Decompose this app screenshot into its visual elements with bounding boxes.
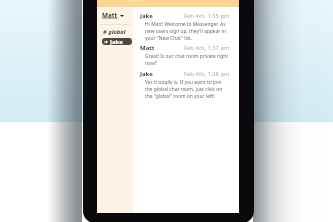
staticText: Feb 4th, 1:38 pm [184,70,230,78]
staticText: your "New Chat" list. [145,35,193,42]
staticText: the global chat room, just click on [145,86,223,93]
button[interactable]: Jake [102,38,132,45]
staticText: the "global" room on your left! [145,93,215,100]
staticText: Feb 4th, 1:37 pm [184,44,230,52]
staticText: Matt [102,11,118,20]
staticText: Great! Is our chat room private right [145,53,229,60]
button[interactable]: Matt [101,10,125,21]
staticText: new users sign up, they'll appear in [145,28,226,35]
staticText: now? [145,60,157,67]
staticText: Jake [140,12,153,20]
staticText: Jake [110,38,123,45]
staticText: Feb 4th, 1:35 pm [184,12,230,20]
staticText: # global [103,28,126,36]
button[interactable]: # global [102,27,127,37]
staticText: Hi Matt! Welcome to Messenger. As [145,21,226,28]
staticText: Matt [140,44,155,52]
staticText: Yes it totally is. If you want to join [145,79,222,86]
staticText: Jake [140,70,153,78]
